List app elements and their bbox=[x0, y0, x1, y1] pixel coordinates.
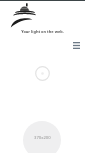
button[interactable]: Logo bbox=[9, 2, 35, 28]
staticText: 370x200 bbox=[34, 135, 51, 141]
staticText: Your light on the web. bbox=[0, 29, 85, 34]
button[interactable]: Menu bbox=[70, 39, 83, 51]
button[interactable]: Image placeholder 370x200 bbox=[23, 121, 61, 153]
